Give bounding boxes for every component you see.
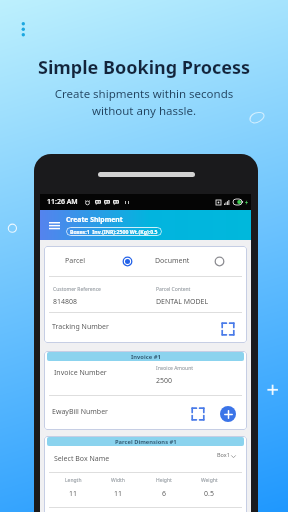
staticText: 11: [69, 489, 78, 499]
staticText: Document: [155, 256, 190, 266]
staticText: Weight: [201, 477, 218, 484]
staticText: 2500: [156, 376, 173, 386]
staticText: Height: [156, 477, 172, 484]
staticText: 0.5: [204, 489, 214, 499]
staticText: EwayBill Number: [52, 407, 109, 417]
staticText: Invoice Number: [54, 368, 107, 378]
staticText: Create shipments within seconds without …: [0, 86, 288, 119]
staticText: Tracking Number: [52, 322, 109, 332]
staticText: DENTAL MODEL: [156, 297, 209, 307]
staticText: Parcel Dimensions #1: [115, 438, 177, 446]
staticText: 11:26 AM: [47, 197, 78, 207]
staticText: Simple Booking Process: [0, 55, 288, 80]
button[interactable]: Document: [214, 256, 225, 267]
button[interactable]: Menu: [49, 219, 60, 232]
staticText: 11: [114, 489, 123, 499]
staticText: Parcel Content: [156, 286, 191, 293]
staticText: Invoice Amount: [156, 365, 194, 372]
staticText: Select Box Name: [54, 454, 110, 464]
button[interactable]: Scan barcode: [191, 407, 205, 421]
staticText: Length: [65, 477, 82, 484]
staticText: Parcel: [65, 256, 86, 266]
staticText: Customer Reference: [53, 286, 101, 293]
staticText: Box1: [217, 451, 230, 458]
staticText: 6: [162, 489, 167, 499]
staticText: Boxes:1 Inv.(INR):2500 Wt.(Kg):0.5: [70, 228, 158, 235]
staticText: Create Shipment: [66, 215, 123, 224]
button[interactable]: Add invoice: [220, 406, 236, 422]
button[interactable]: Scan barcode: [221, 322, 235, 336]
staticText: Width: [111, 477, 125, 484]
button[interactable]: Menu: [40, 210, 251, 240]
staticText: Invoice #1: [131, 353, 161, 361]
button[interactable]: Parcel selected: [122, 256, 133, 267]
staticText: 814808: [53, 297, 78, 307]
